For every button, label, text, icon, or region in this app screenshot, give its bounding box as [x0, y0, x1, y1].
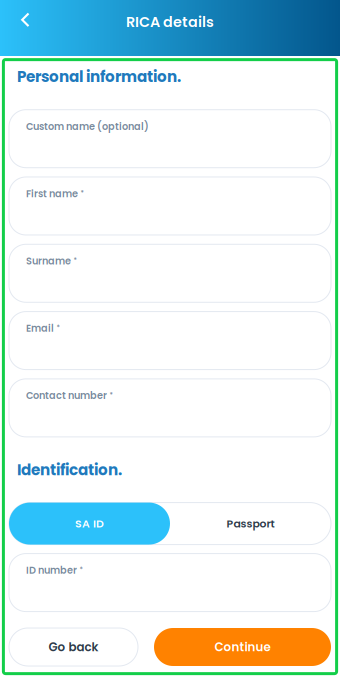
staticText: Custom name (optional) — [26, 120, 149, 133]
staticText: Passport — [226, 516, 274, 531]
button[interactable]: Custom name (optional) — [9, 110, 331, 168]
staticText: Continue — [214, 639, 270, 655]
button[interactable]: ID number — [9, 554, 331, 612]
button[interactable]: SA ID — [9, 503, 170, 545]
button[interactable]: Back — [0, 0, 48, 40]
staticText: Go back — [48, 639, 98, 655]
staticText: ID number — [26, 564, 77, 577]
button[interactable]: Go back — [9, 628, 138, 666]
staticText: First name — [26, 187, 78, 201]
staticText: Personal information. — [17, 66, 181, 87]
button[interactable]: Surname — [9, 244, 331, 302]
staticText: RICA details — [126, 12, 214, 32]
staticText: SA ID — [75, 516, 104, 531]
staticText: Contact number — [26, 389, 107, 402]
staticText: * — [79, 565, 82, 574]
staticText: * — [73, 255, 76, 265]
button[interactable]: Continue — [154, 628, 331, 666]
staticText: * — [109, 390, 112, 399]
staticText: Identification. — [17, 459, 122, 481]
button[interactable]: Passport — [170, 503, 331, 545]
button[interactable]: Email — [9, 312, 331, 370]
button[interactable]: Contact number — [9, 379, 331, 437]
staticText: Surname — [26, 254, 71, 268]
staticText: * — [56, 323, 59, 332]
staticText: * — [80, 188, 83, 197]
staticText: Email — [26, 322, 54, 335]
button[interactable]: First name — [9, 177, 331, 235]
